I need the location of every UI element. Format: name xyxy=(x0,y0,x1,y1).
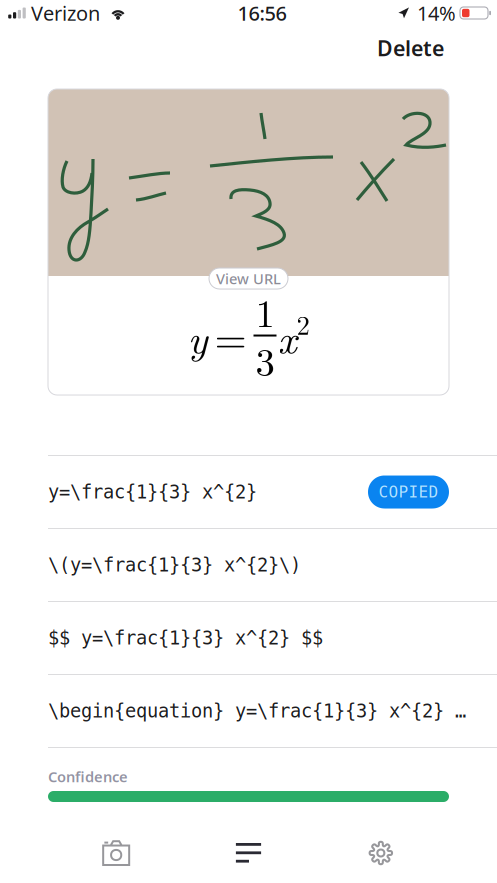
staticText: 1 xyxy=(255,284,274,338)
button[interactable]: y=\frac{1}{3} x^{2} xyxy=(0,456,497,528)
button[interactable]: Settings xyxy=(315,823,447,883)
staticText: View URL xyxy=(216,269,281,288)
staticText: \begin{equation} y=\frac{1}{3} x^{2} \en… xyxy=(48,700,473,722)
button[interactable]: Camera xyxy=(50,823,182,883)
staticText: $$ y=\frac{1}{3} x^{2} $$ xyxy=(48,627,323,649)
staticText: 16:56 xyxy=(237,0,286,26)
button[interactable]: View URL xyxy=(209,268,288,289)
staticText: COPIED xyxy=(378,483,438,501)
staticText: Verizon xyxy=(31,0,100,26)
staticText: 3 xyxy=(255,332,274,387)
staticText: Delete xyxy=(377,34,444,62)
staticText: y=\frac{1}{3} x^{2} xyxy=(48,481,257,503)
staticText: y xyxy=(187,307,207,366)
staticText: 2 xyxy=(296,305,309,342)
button[interactable]: \(y=\frac{1}{3} x^{2}\) xyxy=(0,529,497,601)
staticText: 14% xyxy=(417,0,456,26)
staticText: = xyxy=(214,306,246,365)
button[interactable]: Delete xyxy=(367,28,454,68)
staticText: Confidence xyxy=(48,767,128,786)
staticText: \(y=\frac{1}{3} x^{2}\) xyxy=(48,554,301,576)
button[interactable]: History xyxy=(182,823,315,883)
button[interactable]: $$ y=\frac{1}{3} x^{2} $$ xyxy=(0,602,497,674)
button[interactable]: \begin{equation} y=\frac{1}{3} x^{2} \en… xyxy=(0,675,497,747)
staticText: x xyxy=(277,307,296,366)
